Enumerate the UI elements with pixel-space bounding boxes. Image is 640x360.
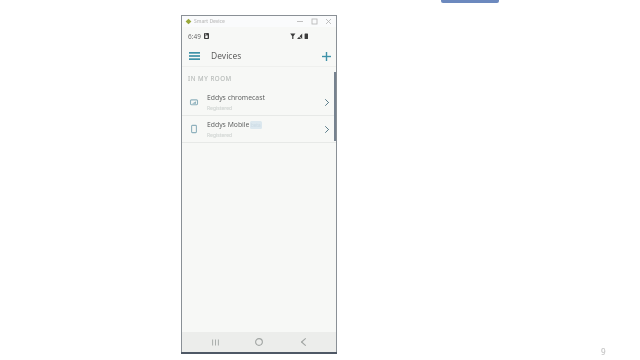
button[interactable]: Recent apps	[204, 332, 226, 352]
staticText: Smart Device	[194, 18, 225, 25]
button[interactable]: Home	[248, 332, 270, 352]
staticText: Registered	[207, 132, 233, 139]
button[interactable]: Eddys Mobile	[182, 116, 336, 142]
staticText: Eddys Mobile	[207, 120, 250, 129]
staticText: Devices	[211, 50, 242, 62]
staticText: IN MY ROOM	[188, 74, 232, 82]
button[interactable]: Eddys chromecast	[182, 89, 336, 115]
button[interactable]: Open navigation menu	[185, 47, 203, 65]
staticText: 9	[601, 346, 606, 357]
button[interactable]: Back	[292, 332, 314, 352]
staticText: 6:49	[188, 32, 201, 41]
staticText: Registered	[207, 105, 233, 112]
staticText: Eddys chromecast	[207, 93, 265, 102]
button[interactable]: Add device	[317, 47, 335, 65]
staticText: beta	[251, 122, 261, 128]
